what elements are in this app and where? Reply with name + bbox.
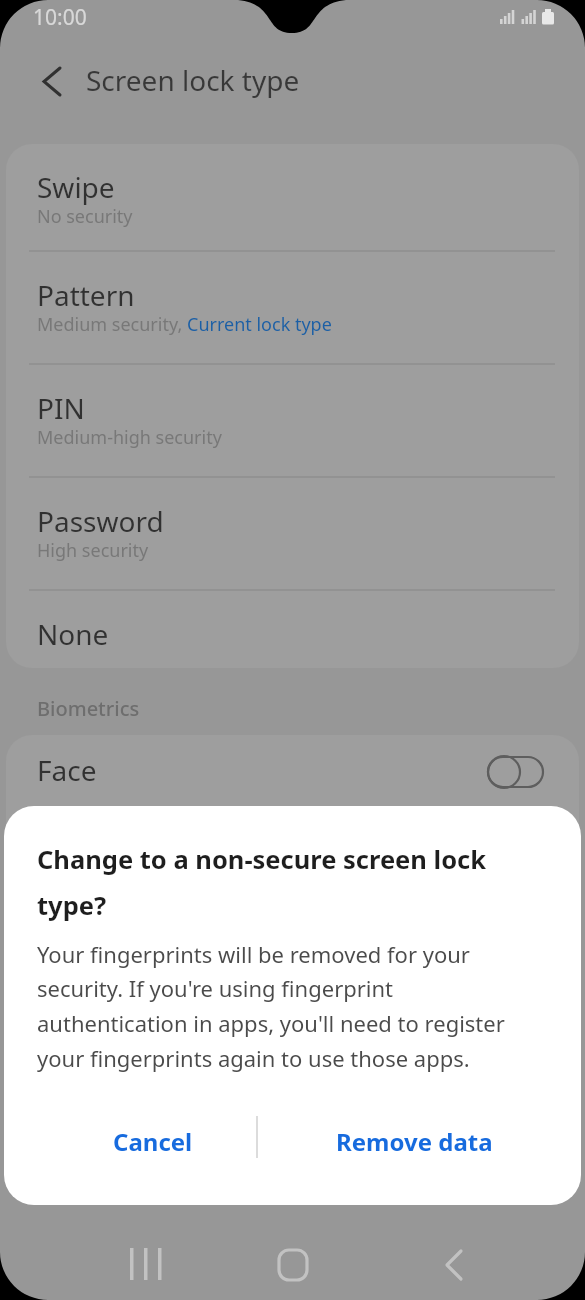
staticText: Swipe	[37, 168, 115, 206]
staticText: None	[37, 615, 109, 653]
staticText: Change to a non-secure screen lock type?	[37, 842, 487, 923]
staticText: Screen lock type	[86, 61, 300, 99]
staticText: Your fingerprints will be removed for yo…	[37, 939, 505, 1074]
staticText: Medium security,	[37, 312, 187, 337]
staticText: Medium-high security	[37, 425, 222, 450]
button[interactable]: None	[6, 591, 579, 668]
staticText: Face	[37, 751, 97, 789]
staticText: Pattern	[37, 276, 135, 314]
button[interactable]: Pattern	[6, 252, 579, 365]
button[interactable]	[480, 749, 548, 793]
staticText: Remove data	[336, 1125, 493, 1158]
staticText: High security	[37, 538, 149, 563]
button[interactable]	[118, 1238, 170, 1290]
button[interactable]: Swipe	[6, 144, 579, 252]
staticText: 10:00	[33, 3, 87, 32]
staticText: No security	[37, 204, 133, 229]
button[interactable]: PIN	[6, 365, 579, 478]
button[interactable]: Current lock type	[187, 312, 332, 337]
button[interactable]	[267, 1238, 319, 1290]
staticText: Cancel	[113, 1125, 193, 1158]
button[interactable]: Remove data	[320, 1114, 508, 1168]
button[interactable]: Face	[6, 735, 579, 1035]
button[interactable]	[432, 1238, 484, 1290]
button[interactable]: Password	[6, 478, 579, 591]
button[interactable]: Cancel	[79, 1114, 227, 1168]
staticText: Biometrics	[37, 695, 140, 722]
staticText: Password	[37, 502, 164, 540]
staticText: PIN	[37, 389, 85, 427]
button[interactable]	[28, 58, 72, 102]
